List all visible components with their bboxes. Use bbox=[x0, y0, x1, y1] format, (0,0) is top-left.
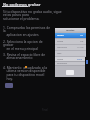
staticText: Final bbox=[42, 108, 48, 112]
staticText: 12 GB bbox=[77, 46, 84, 49]
staticText: 1. Comprueba los permisos de la aplicaci… bbox=[3, 25, 51, 37]
staticText: 4. Mantenlo actualizado a la ultima vers… bbox=[3, 65, 53, 81]
staticText: Video bbox=[57, 40, 64, 43]
staticText: Video bbox=[57, 58, 64, 61]
staticText: Audio bbox=[57, 34, 64, 37]
staticText: No podemos grabar bbox=[3, 2, 41, 7]
staticText: Ajustes bbox=[66, 29, 75, 32]
staticText: Save bbox=[77, 58, 83, 61]
staticText: Off bbox=[80, 40, 84, 43]
staticText: Si tu dispositivo no graba audio, sigue … bbox=[3, 9, 67, 21]
staticText: On bbox=[80, 34, 84, 37]
staticText: Grabacion bbox=[57, 62, 68, 65]
staticText: 3. Revisa el espacio libre de almacenami… bbox=[3, 52, 53, 60]
staticText: 2. Selecciona la opcion de grabar en el … bbox=[3, 39, 53, 51]
staticText: Mas bbox=[57, 52, 62, 55]
staticText: Memoria bbox=[57, 46, 67, 49]
